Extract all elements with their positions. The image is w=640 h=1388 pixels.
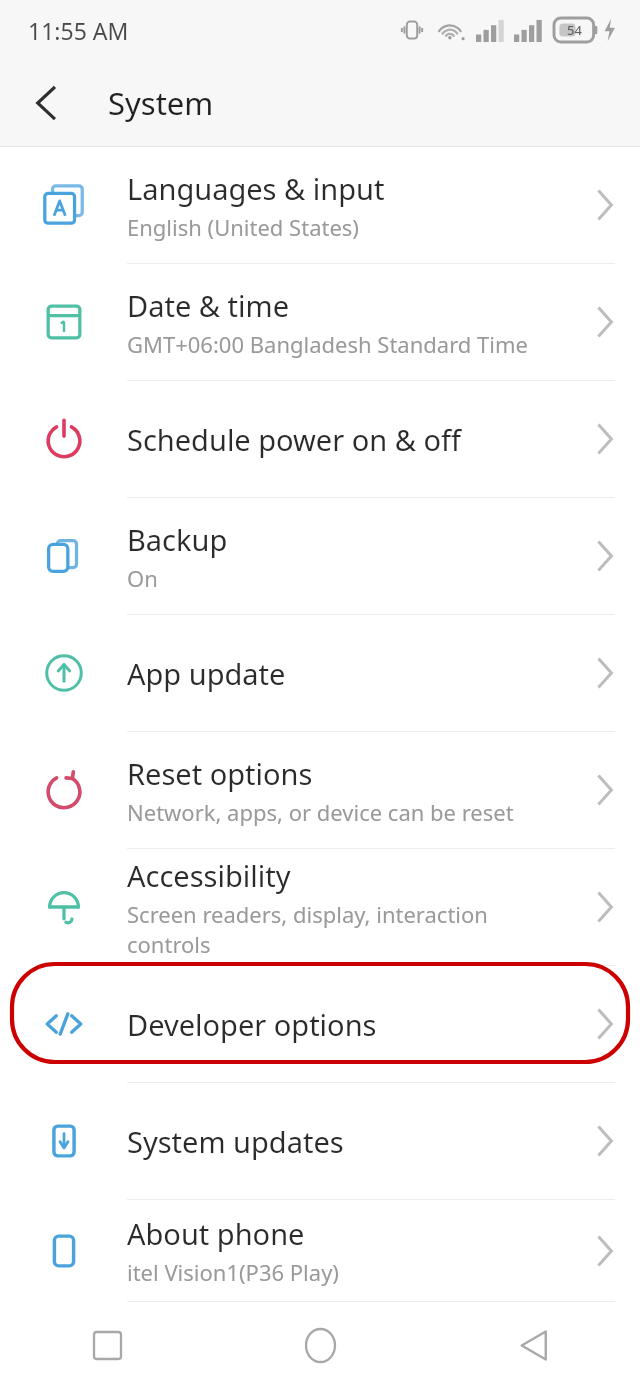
staticText: On [127, 563, 158, 593]
staticText: Date & time [127, 286, 289, 325]
staticText: Developer options [127, 1005, 377, 1044]
button[interactable]: Backup [0, 498, 640, 614]
button[interactable]: Developer options [0, 966, 640, 1082]
staticText: About phone [127, 1214, 305, 1253]
staticText: GMT+06:00 Bangladesh Standard Time [127, 329, 528, 359]
staticText: Schedule power on & off [127, 420, 461, 459]
staticText: Reset options [127, 754, 313, 793]
staticText: itel Vision1(P36 Play) [127, 1257, 339, 1287]
button[interactable]: About phone [0, 1200, 640, 1301]
staticText: Screen readers, display, interaction con… [127, 899, 570, 959]
button[interactable]: Accessibility [0, 849, 640, 965]
button[interactable]: Home [214, 1302, 427, 1388]
staticText: System [108, 82, 214, 124]
button[interactable]: App update [0, 615, 640, 731]
button[interactable]: Back [16, 73, 76, 133]
button[interactable]: Languages & input [0, 147, 640, 263]
staticText: System updates [127, 1122, 344, 1161]
staticText: Languages & input [127, 169, 385, 208]
button[interactable]: Back [427, 1302, 640, 1388]
staticText: Backup [127, 520, 228, 559]
button[interactable]: Date & time [0, 264, 640, 380]
staticText: Network, apps, or device can be reset [127, 797, 514, 827]
button[interactable]: Schedule power on & off [0, 381, 640, 497]
staticText: 11:55 AM [28, 15, 129, 46]
button[interactable]: Recents [0, 1302, 214, 1388]
button[interactable]: System updates [0, 1083, 640, 1199]
staticText: 54 [567, 21, 582, 39]
staticText: English (United States) [127, 212, 359, 242]
staticText: Accessibility [127, 856, 291, 895]
button[interactable]: Reset options [0, 732, 640, 848]
staticText: App update [127, 654, 286, 693]
